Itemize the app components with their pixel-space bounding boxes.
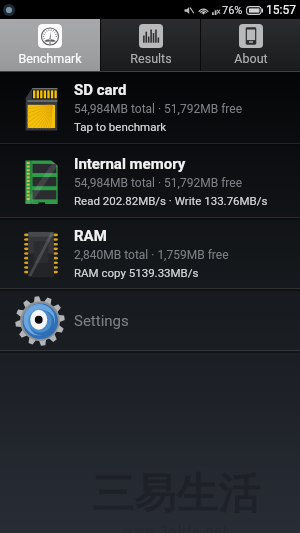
staticText: Settings [74,312,129,330]
button[interactable]: Results [101,19,200,71]
staticText: 2,840MB total · 1,759MB free [74,248,229,262]
staticText: 54,984MB total · 51,792MB free [74,176,242,190]
other: Notification [3,4,15,16]
button[interactable]: SD card [0,72,300,146]
button[interactable]: Internal memory [0,146,300,220]
staticText: 54,984MB total · 51,792MB free [74,102,242,116]
staticText: SD card [74,81,127,99]
staticText: Internal memory [74,155,186,173]
staticText: 三易生活 [92,468,260,521]
button[interactable]: Settings [0,291,300,353]
button[interactable]: Benchmark [0,19,100,71]
staticText: About [234,51,268,66]
staticText: Read 202.82MB/s · Write 133.76MB/s [74,194,268,207]
staticText: 76% [222,4,243,17]
staticText: RAM copy 5139.33MB/s [74,266,199,279]
staticText: RAM [74,227,107,245]
button[interactable]: RAM [0,220,300,291]
staticText: Tap to benchmark [74,120,167,133]
staticText: Results [130,51,172,66]
staticText: 15:57 [266,3,296,17]
staticText: Benchmark [18,51,82,66]
button[interactable]: About [201,19,300,71]
